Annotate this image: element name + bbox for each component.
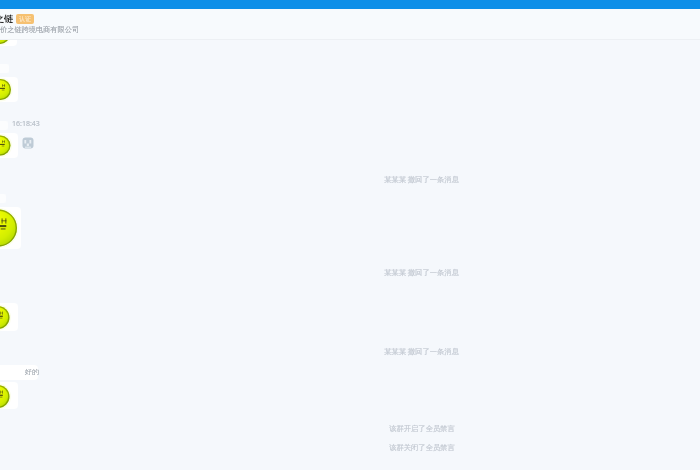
button[interactable]: Sticker message xyxy=(0,207,21,249)
staticText: 价之链跨境电商有限公司 xyxy=(0,25,80,34)
button[interactable]: Sticker message xyxy=(0,77,18,102)
button[interactable]: 价之链 xyxy=(0,9,700,39)
staticText: 某某某 撤回了一条消息 xyxy=(384,267,459,277)
button[interactable]: Sticker message xyxy=(0,382,18,409)
button[interactable]: 某某某 撤回了一条消息 xyxy=(271,346,571,356)
staticText: 认证 xyxy=(19,15,31,23)
button[interactable]: 某某某 撤回了一条消息 xyxy=(271,174,571,184)
button[interactable]: 某某某 撤回了一条消息 xyxy=(271,267,571,277)
button[interactable]: 该群开启了全员禁言 xyxy=(272,424,572,433)
staticText: 价之链 xyxy=(0,13,13,24)
staticText: 好的 xyxy=(25,367,39,376)
staticText: 某某某 撤回了一条消息 xyxy=(384,346,459,356)
button[interactable] xyxy=(0,365,38,380)
button[interactable]: Sticker message xyxy=(0,303,18,331)
button[interactable]: Sticker message xyxy=(0,20,17,46)
button[interactable]: 该群关闭了全员禁言 xyxy=(272,443,572,452)
staticText: 该群开启了全员禁言 xyxy=(389,424,455,433)
staticText: 16:18:43 xyxy=(12,119,40,129)
staticText: 某某某 撤回了一条消息 xyxy=(384,174,459,184)
staticText: 该群关闭了全员禁言 xyxy=(389,443,455,452)
button[interactable]: Sticker message xyxy=(0,133,18,158)
